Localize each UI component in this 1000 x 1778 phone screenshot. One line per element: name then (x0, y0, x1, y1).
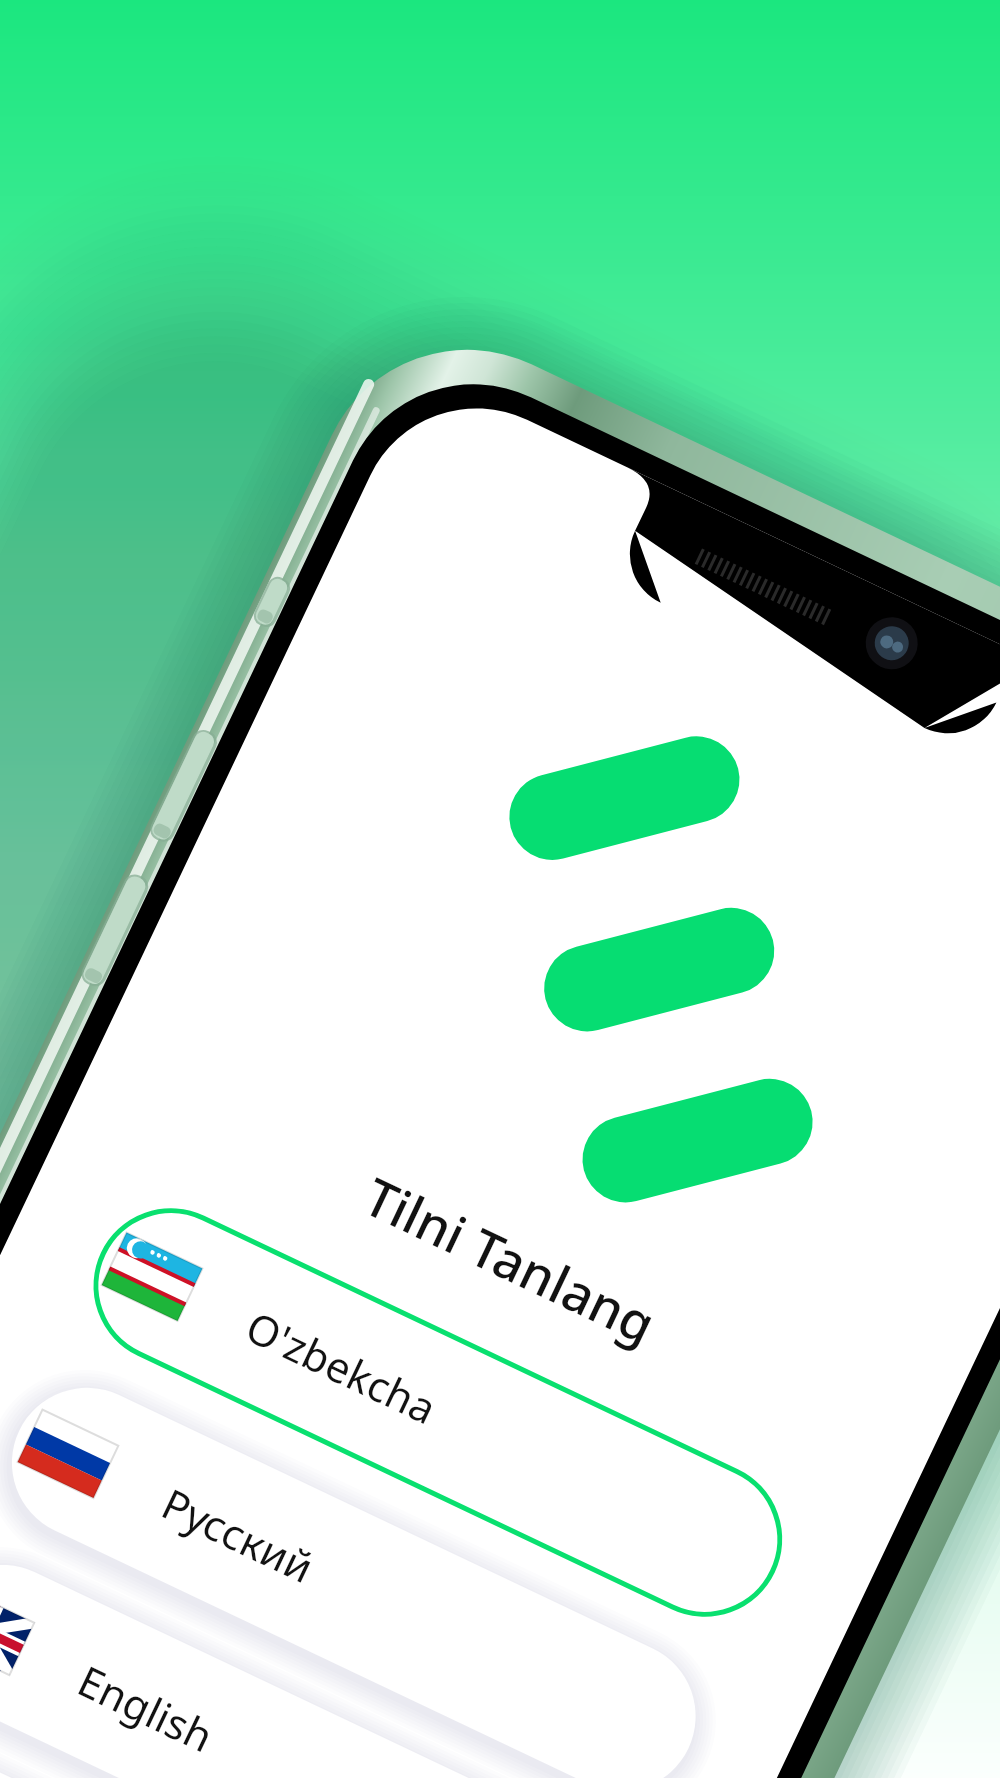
button[interactable]: Tilni tanlang — language selection previ… (0, 0, 1000, 1778)
